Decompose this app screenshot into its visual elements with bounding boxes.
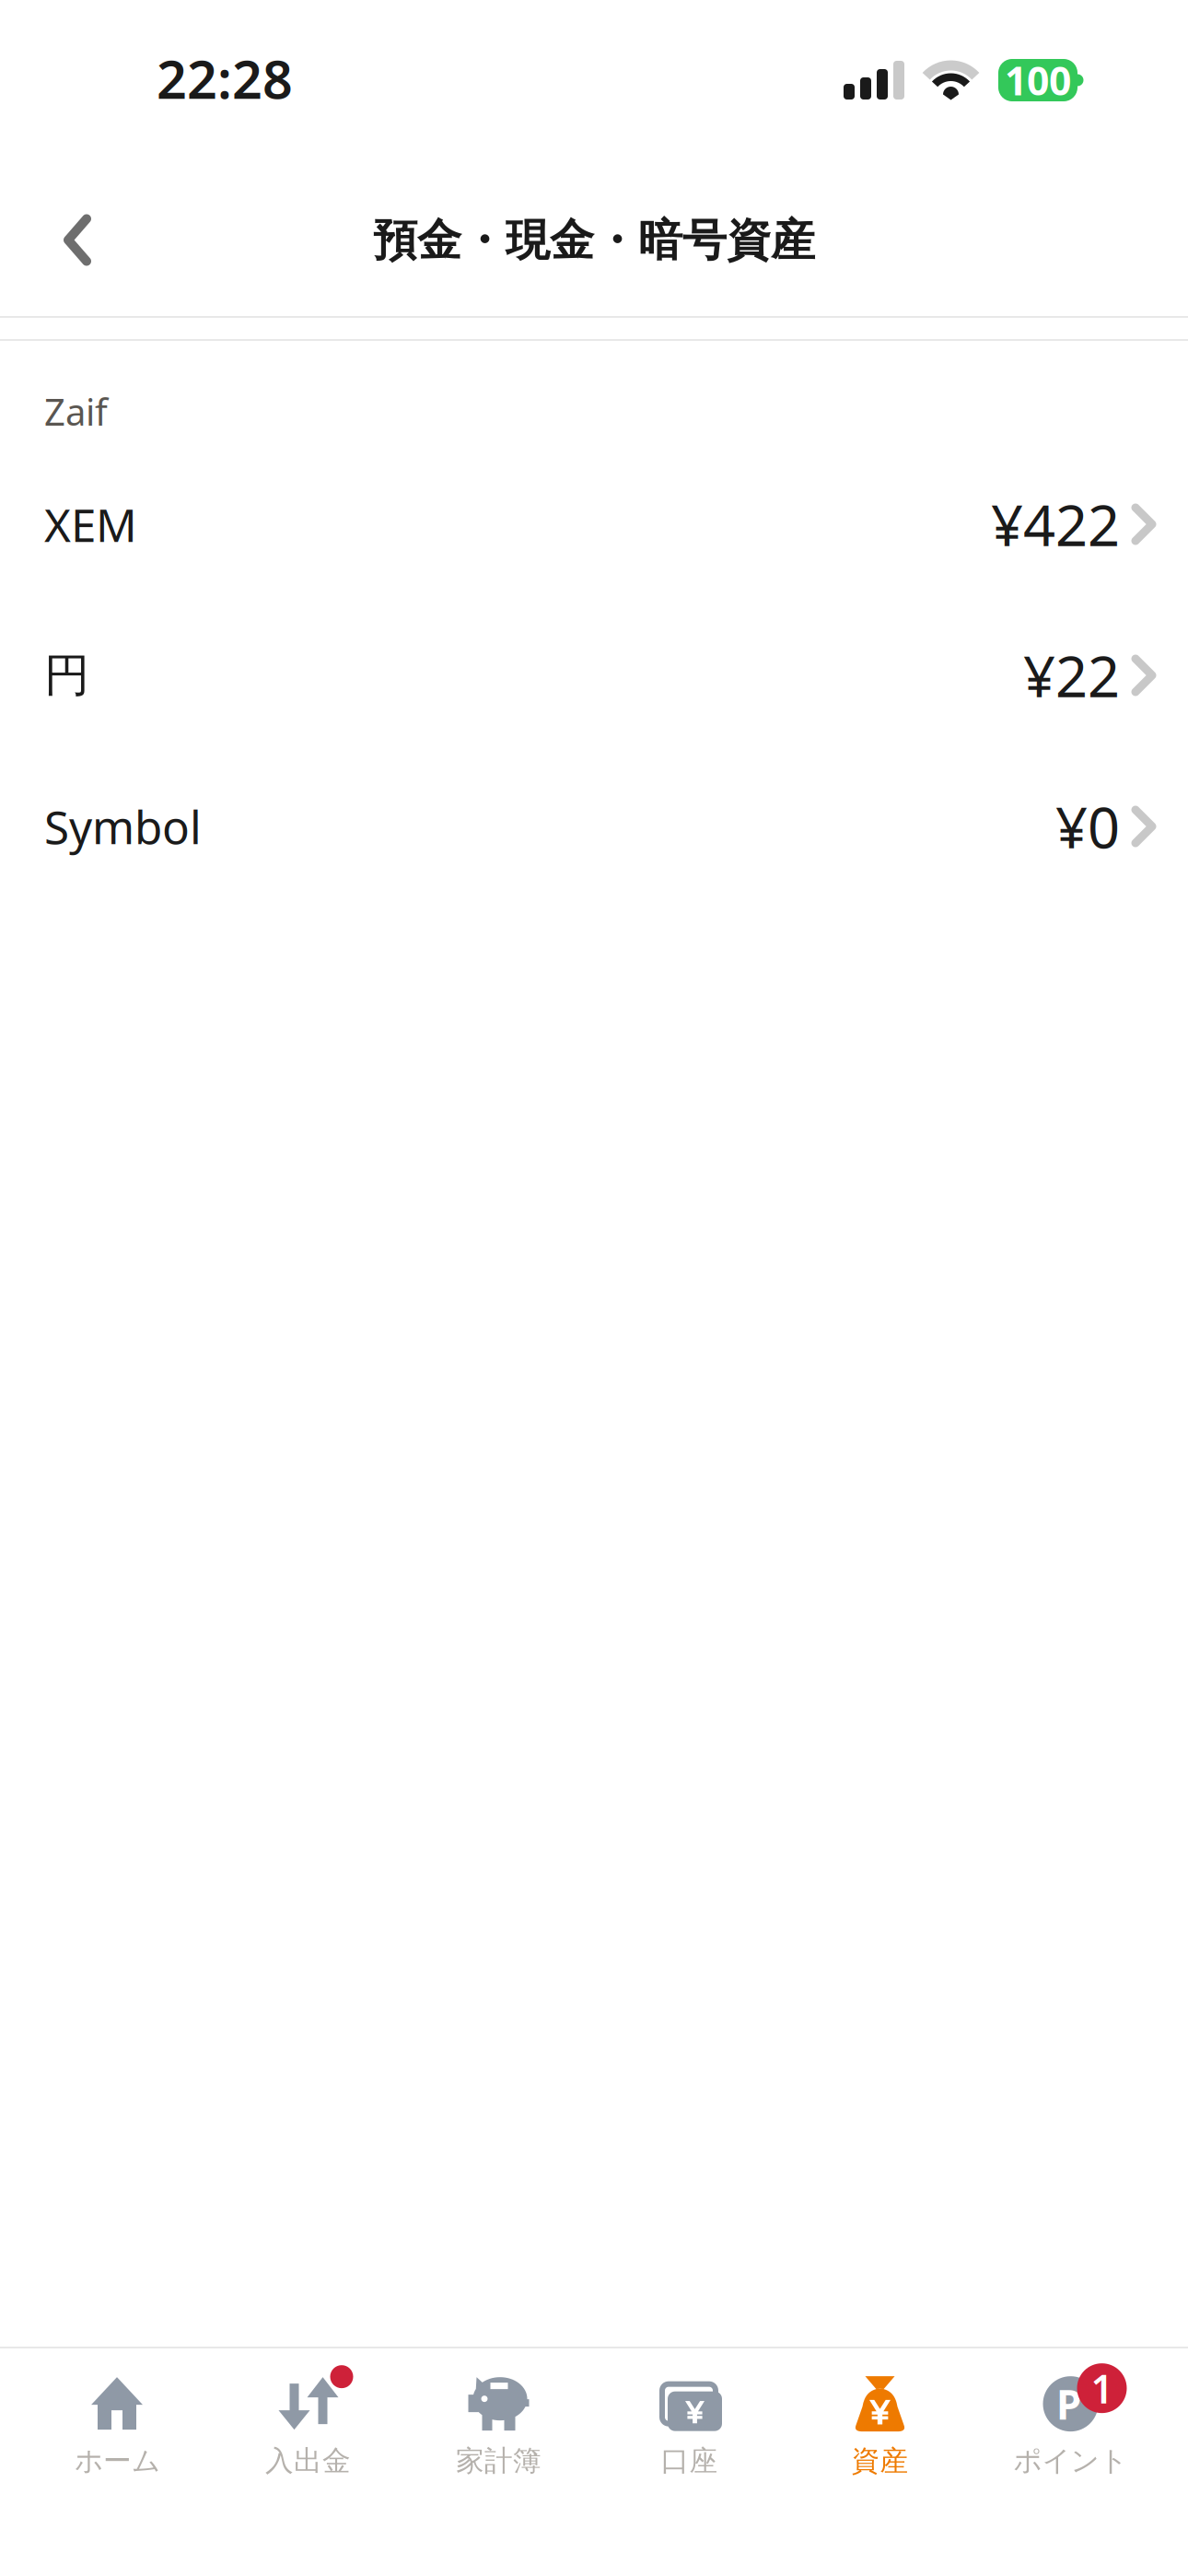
staticText: 口座: [661, 2444, 718, 2478]
button[interactable]: ポイント: [975, 2348, 1166, 2482]
staticText: 1: [1091, 2362, 1113, 2414]
staticText: 預金・現金・暗号資産: [373, 213, 815, 268]
staticText: Symbol: [44, 796, 202, 857]
staticText: P: [1056, 2377, 1081, 2431]
staticText: ¥22: [1023, 638, 1120, 713]
staticText: XEM: [44, 494, 137, 554]
staticText: Zaif: [44, 387, 108, 436]
staticText: 円: [44, 647, 89, 703]
button[interactable]: Symbol: [0, 751, 1188, 902]
button[interactable]: 家計簿: [403, 2348, 594, 2482]
staticText: 入出金: [265, 2444, 351, 2478]
staticText: 資産: [851, 2444, 908, 2478]
button[interactable]: XEM: [0, 449, 1188, 600]
staticText: 100: [1005, 54, 1071, 106]
staticText: ホーム: [75, 2444, 160, 2478]
button[interactable]: 円: [0, 600, 1188, 751]
staticText: ¥422: [991, 487, 1120, 562]
button[interactable]: 入出金: [213, 2348, 403, 2482]
staticText: 家計簿: [456, 2444, 542, 2478]
button[interactable]: Back: [33, 199, 122, 282]
button[interactable]: 資産: [785, 2348, 975, 2482]
staticText: 22:28: [157, 43, 293, 113]
button[interactable]: ホーム: [22, 2348, 213, 2482]
staticText: ポイント: [1013, 2444, 1128, 2478]
staticText: ¥0: [1055, 789, 1120, 864]
button[interactable]: 口座: [594, 2348, 785, 2482]
